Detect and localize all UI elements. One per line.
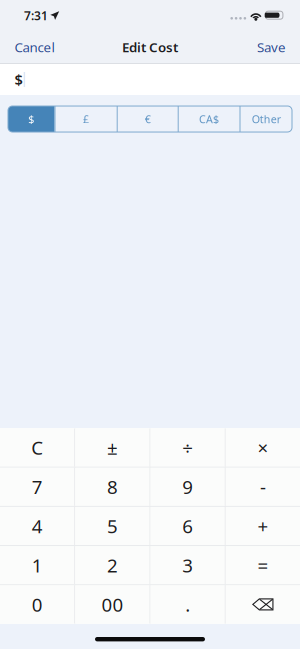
button[interactable]: 9 xyxy=(150,468,225,506)
button[interactable]: Save xyxy=(243,31,300,63)
button[interactable]: £ xyxy=(55,106,117,132)
staticText: 0 xyxy=(32,592,43,617)
staticText: Other xyxy=(252,112,281,126)
button[interactable]: Cancel xyxy=(0,31,69,63)
button[interactable]: 8 xyxy=(75,468,149,506)
staticText: 1 xyxy=(32,553,43,578)
staticText: × xyxy=(257,435,268,460)
staticText: 6 xyxy=(182,514,193,538)
staticText: $ xyxy=(28,112,34,126)
button[interactable]: $ xyxy=(8,106,54,132)
button[interactable]: ÷ xyxy=(150,428,225,467)
staticText: CA$ xyxy=(199,112,219,126)
staticText: 8 xyxy=(107,474,118,499)
button[interactable]: € xyxy=(118,106,178,132)
button[interactable]: 1 xyxy=(0,546,74,584)
staticText: 4 xyxy=(32,514,43,538)
button[interactable]: + xyxy=(226,507,300,545)
staticText: 7:31 xyxy=(24,7,48,23)
staticText: 00 xyxy=(101,592,123,617)
staticText: Cancel xyxy=(14,38,54,56)
button[interactable] xyxy=(226,585,300,623)
button[interactable]: × xyxy=(226,428,300,467)
staticText: Edit Cost xyxy=(122,38,178,56)
staticText: . xyxy=(185,592,190,617)
button[interactable]: 7 xyxy=(0,468,74,506)
button[interactable]: 0 xyxy=(0,585,74,623)
button[interactable]: 00 xyxy=(75,585,149,623)
staticText: ± xyxy=(107,435,118,460)
staticText: 3 xyxy=(182,553,193,578)
staticText: = xyxy=(257,553,268,578)
button[interactable]: ± xyxy=(75,428,149,467)
staticText: - xyxy=(260,474,266,499)
staticText: 9 xyxy=(182,474,193,499)
staticText: 2 xyxy=(107,553,118,578)
button[interactable]: 6 xyxy=(150,507,225,545)
staticText: £ xyxy=(83,112,89,126)
button[interactable]: 2 xyxy=(75,546,149,584)
staticText: ÷ xyxy=(182,435,193,460)
staticText: 5 xyxy=(107,514,118,538)
button[interactable]: 4 xyxy=(0,507,74,545)
button[interactable]: CA$ xyxy=(179,106,239,132)
button[interactable]: 5 xyxy=(75,507,149,545)
staticText: 7 xyxy=(32,474,43,499)
button[interactable]: Other xyxy=(240,106,292,132)
button[interactable]: = xyxy=(226,546,300,584)
button[interactable]: - xyxy=(226,468,300,506)
button[interactable]: C xyxy=(0,428,74,467)
staticText: + xyxy=(257,514,268,538)
staticText: $ xyxy=(14,70,22,89)
staticText: € xyxy=(145,112,151,126)
button[interactable]: 3 xyxy=(150,546,225,584)
staticText: C xyxy=(31,435,43,460)
button[interactable]: . xyxy=(150,585,225,623)
staticText: Save xyxy=(257,38,286,56)
